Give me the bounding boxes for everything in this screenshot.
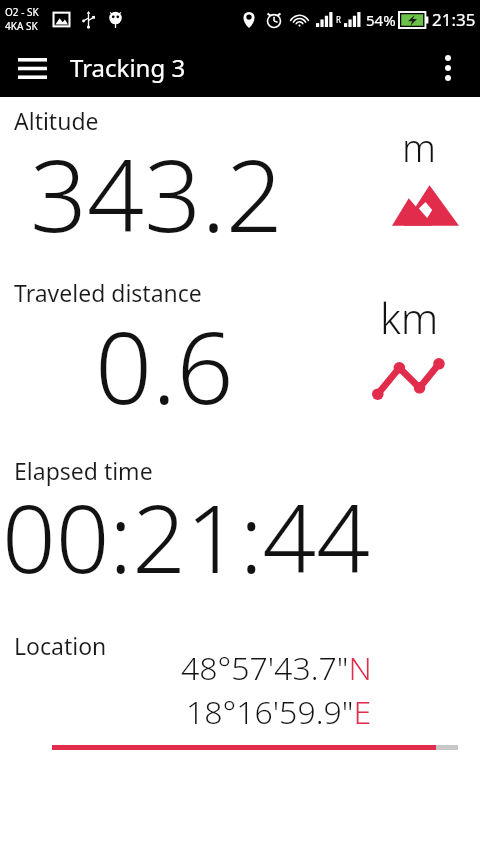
staticText: 00:21:44 [2,473,370,601]
staticText: 54% [366,10,396,30]
staticText: Elapsed time [14,455,153,486]
button[interactable]: Altitude [0,97,480,269]
staticText: Tracking 3 [70,51,186,84]
staticText: 21:35 [432,8,476,31]
button[interactable]: Traveled distance [0,269,480,447]
staticText: Altitude [14,105,99,136]
button[interactable]: Location [0,624,480,744]
button[interactable]: More options [424,44,472,92]
staticText: 4KA SK [5,19,38,33]
staticText: m [402,121,436,173]
button[interactable]: Elapsed time [0,447,480,624]
button[interactable]: Open navigation menu [8,44,56,92]
staticText: 343.2 [30,125,283,261]
staticText: Traveled distance [14,277,202,308]
staticText: R [336,14,341,25]
staticText: 18°16'59.9"E [186,690,372,734]
staticText: O2 - SK [5,5,39,19]
staticText: Location [14,630,107,661]
staticText: 0.6 [95,297,234,433]
staticText: km [380,289,439,346]
staticText: 48°57'43.7"N [181,646,372,690]
